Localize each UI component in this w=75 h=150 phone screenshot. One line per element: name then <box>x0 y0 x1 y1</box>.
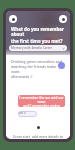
staticText: Great start, add more details to your an… <box>13 134 63 139</box>
staticText: I remember the we said our vows and I re… <box>18 95 65 107</box>
staticText: Drinking green smoothies and watching he… <box>11 59 65 79</box>
button[interactable]: I remember the we said our vows and I re… <box>18 95 65 107</box>
button[interactable]: Attach <box>34 123 43 132</box>
staticText: What do you remember about <box>11 26 65 38</box>
button[interactable]: Add a comment <box>18 111 37 117</box>
button[interactable]: Profile <box>59 15 67 23</box>
staticText: Add a comment <box>18 111 37 117</box>
button[interactable]: Avatar <box>58 62 65 69</box>
button[interactable]: Memory with Amelia Carter <box>9 45 67 51</box>
staticText: the first time you met? <box>11 38 63 44</box>
staticText: Memory with Amelia Carter <box>11 46 53 50</box>
button[interactable]: Close <box>9 15 17 23</box>
